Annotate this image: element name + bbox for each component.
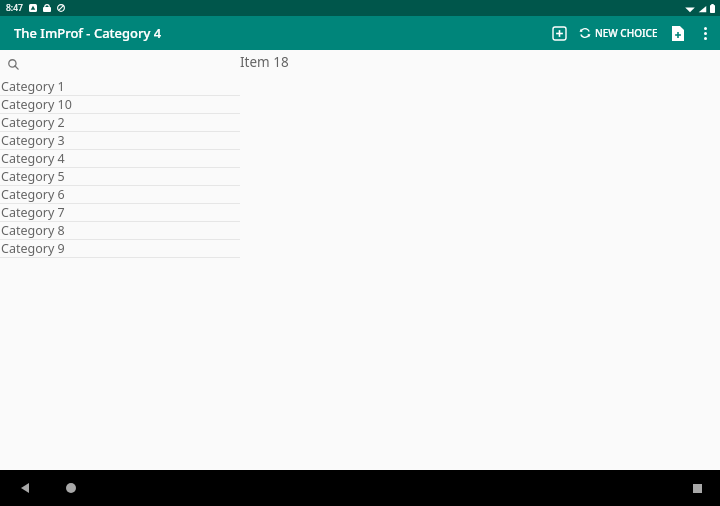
staticText: Category 6 [1, 186, 65, 203]
button[interactable]: Category 6 [0, 186, 240, 204]
button[interactable]: More options [692, 16, 718, 50]
staticText: The ImProf - Category 4 [14, 24, 162, 42]
button[interactable]: Recent apps [686, 477, 708, 499]
button[interactable]: Category 3 [0, 132, 240, 150]
button[interactable]: Category 5 [0, 168, 240, 186]
button[interactable]: Category 2 [0, 114, 240, 132]
button[interactable]: Category 7 [0, 204, 240, 222]
button[interactable]: Category 10 [0, 96, 240, 114]
button[interactable]: Category 1 [0, 78, 240, 96]
staticText: Category 10 [1, 96, 72, 113]
staticText: Category 9 [1, 240, 65, 257]
button[interactable]: New note [664, 16, 692, 50]
button[interactable]: Search [0, 50, 240, 78]
staticText: Item 18 [240, 53, 289, 71]
button[interactable]: Back [14, 477, 36, 499]
staticText: Category 8 [1, 222, 65, 239]
staticText: Category 3 [1, 132, 65, 149]
staticText: NEW CHOICE [595, 26, 658, 40]
staticText: Category 7 [1, 204, 65, 221]
staticText: Category 1 [1, 78, 65, 95]
staticText: 8:47 [6, 2, 23, 14]
button[interactable]: Category 4 [0, 150, 240, 168]
button[interactable]: Home [60, 477, 82, 499]
button[interactable]: Add [545, 16, 573, 50]
staticText: Category 5 [1, 168, 65, 185]
staticText: Category 4 [1, 150, 65, 167]
staticText: Category 2 [1, 114, 65, 131]
button[interactable]: NEW CHOICE [573, 16, 664, 50]
button[interactable]: Category 9 [0, 240, 240, 258]
button[interactable]: Category 8 [0, 222, 240, 240]
